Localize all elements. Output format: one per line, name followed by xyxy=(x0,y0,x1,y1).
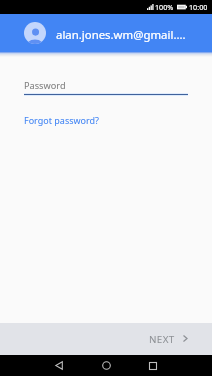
staticText: Forgot password? xyxy=(24,114,100,126)
button[interactable]: Password xyxy=(24,79,188,96)
staticText: 100% xyxy=(155,2,174,12)
staticText: Password xyxy=(24,79,66,92)
button[interactable]: Forgot password? xyxy=(24,114,100,126)
button[interactable]: NEXT xyxy=(149,333,189,346)
button[interactable]: alan.jones.wm@gmail.... xyxy=(24,14,212,52)
button[interactable]: Recent apps xyxy=(134,355,172,376)
staticText: 10:00 xyxy=(189,2,208,12)
staticText: alan.jones.wm@gmail.... xyxy=(56,27,186,43)
staticText: NEXT xyxy=(149,333,175,346)
button[interactable]: Home xyxy=(87,355,125,376)
button[interactable]: Back xyxy=(40,355,78,376)
